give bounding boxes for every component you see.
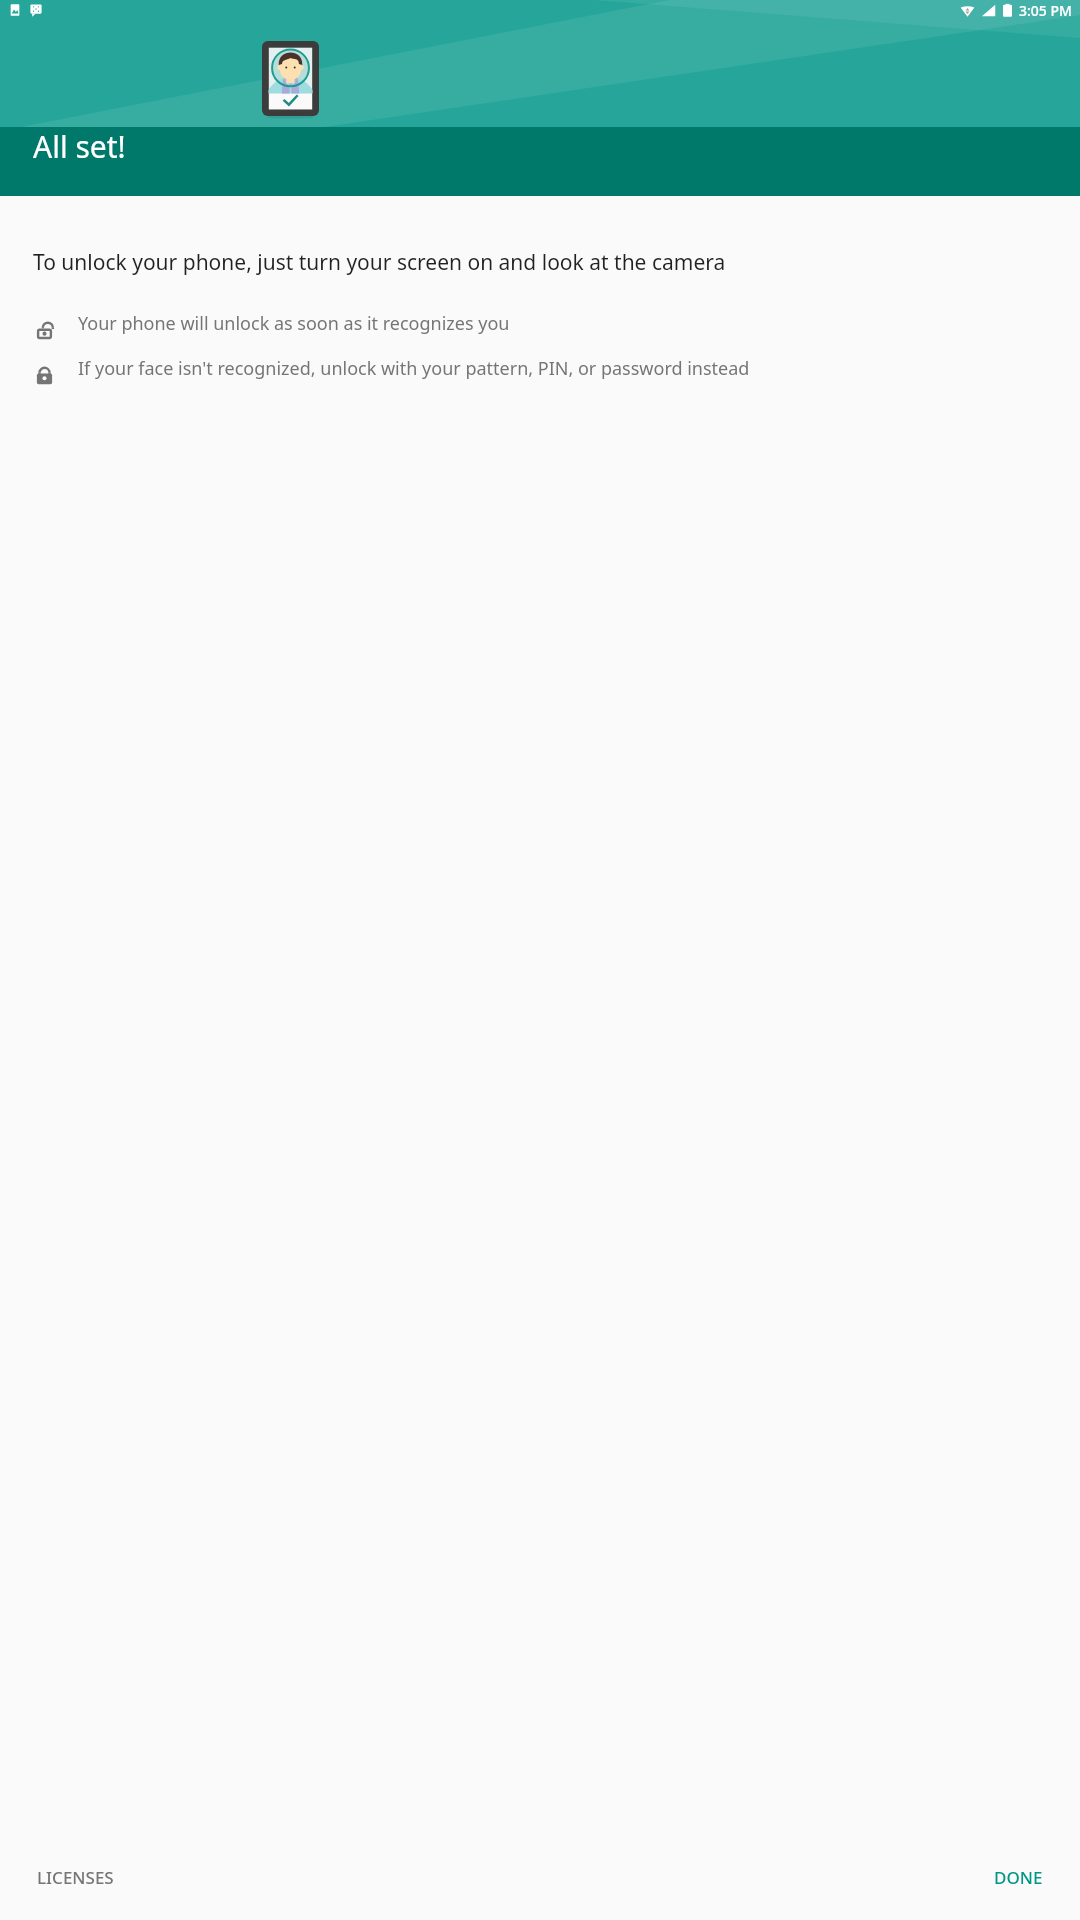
button[interactable]: LICENSES: [20, 1852, 131, 1903]
staticText: 3:05 PM: [1019, 1, 1072, 20]
staticText: Your phone will unlock as soon as it rec…: [78, 311, 510, 336]
staticText: To unlock your phone, just turn your scr…: [33, 248, 726, 277]
staticText: DONE: [994, 1866, 1043, 1889]
staticText: If your face isn't recognized, unlock wi…: [78, 356, 750, 381]
staticText: LICENSES: [37, 1866, 114, 1889]
staticText: All set!: [33, 126, 126, 167]
button[interactable]: DONE: [977, 1852, 1060, 1903]
